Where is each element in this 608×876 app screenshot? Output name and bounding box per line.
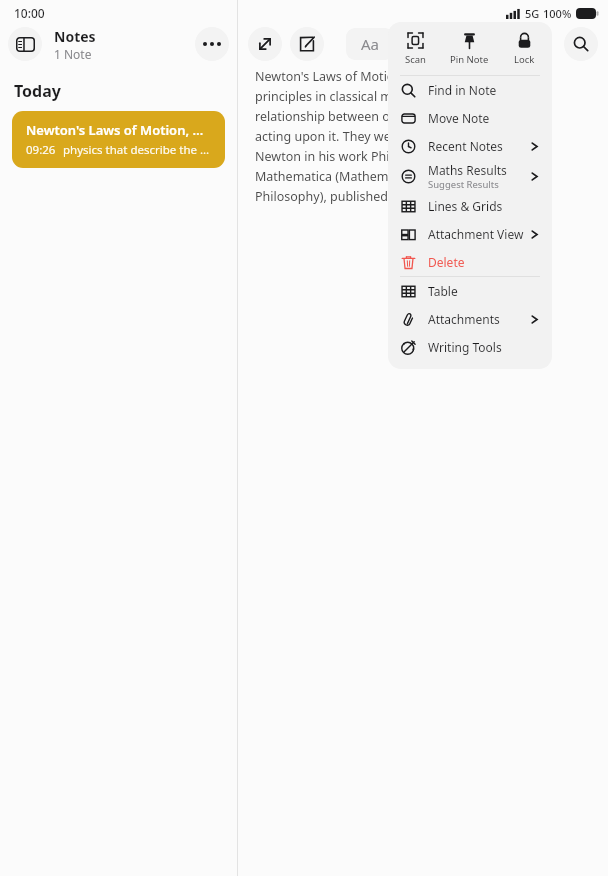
button[interactable]: Attachments xyxy=(388,305,552,333)
staticText: Writing Tools xyxy=(428,339,502,355)
staticText: Maths Results xyxy=(428,162,507,178)
button[interactable]: Lines & Grids xyxy=(388,192,552,220)
button[interactable]: Find in Note xyxy=(388,76,552,104)
staticText: 10:00 xyxy=(14,5,45,21)
staticText: Philosophy), published in 1687. xyxy=(255,188,438,205)
button[interactable]: Pin Note xyxy=(442,22,497,75)
staticText: 09:26 xyxy=(26,142,56,158)
staticText: 1 Note xyxy=(54,46,92,62)
staticText: Pin Note xyxy=(450,53,489,66)
staticText: relationship between objects and forces xyxy=(255,108,490,125)
staticText: Aa xyxy=(361,34,380,54)
button[interactable]: More options xyxy=(195,27,229,61)
staticText: Lock xyxy=(514,53,535,66)
button[interactable]: Attachment View xyxy=(388,220,552,248)
staticText: Newton's Laws of Motion, w... xyxy=(26,121,211,139)
staticText: Delete xyxy=(428,254,465,270)
button[interactable]: Move Note xyxy=(388,104,552,132)
staticText: Move Note xyxy=(428,110,490,126)
button[interactable]: Aa xyxy=(346,28,394,60)
button[interactable]: Scan xyxy=(388,22,442,75)
staticText: Attachment View xyxy=(428,226,524,242)
staticText: Notes xyxy=(54,27,96,46)
staticText: Table xyxy=(428,283,458,299)
staticText: 5G xyxy=(525,6,540,21)
staticText: Lines & Grids xyxy=(428,198,503,214)
staticText: Suggest Results xyxy=(428,178,499,191)
staticText: 100% xyxy=(543,6,572,21)
staticText: principles in classical mechanics, des xyxy=(255,88,471,105)
button[interactable]: Maths Results xyxy=(388,160,552,192)
staticText: Today xyxy=(14,80,61,102)
staticText: Recent Notes xyxy=(428,138,503,154)
button[interactable]: Delete xyxy=(388,248,552,276)
button[interactable]: Newton's Laws of Motion, w... xyxy=(12,111,225,168)
button[interactable]: Lock xyxy=(497,22,552,75)
staticText: Attachments xyxy=(428,311,500,327)
staticText: Scan xyxy=(405,53,426,66)
button[interactable]: Search xyxy=(564,27,598,61)
button[interactable]: Recent Notes xyxy=(388,132,552,160)
button[interactable]: New note xyxy=(290,27,324,61)
staticText: Mathematica (Mathematical Principles of xyxy=(255,168,495,185)
button[interactable]: Table xyxy=(388,277,552,305)
staticText: physics that describe the r... xyxy=(63,142,211,158)
button[interactable]: Toggle sidebar xyxy=(8,27,42,61)
staticText: Newton's Laws of Motion, which are xyxy=(255,68,466,85)
button[interactable]: Writing Tools xyxy=(388,333,552,361)
staticText: acting upon it. They were described by xyxy=(255,128,481,145)
staticText: Find in Note xyxy=(428,82,497,98)
button[interactable]: Expand xyxy=(248,27,282,61)
staticText: Newton in his work Philosophiae Naturali… xyxy=(255,148,503,165)
